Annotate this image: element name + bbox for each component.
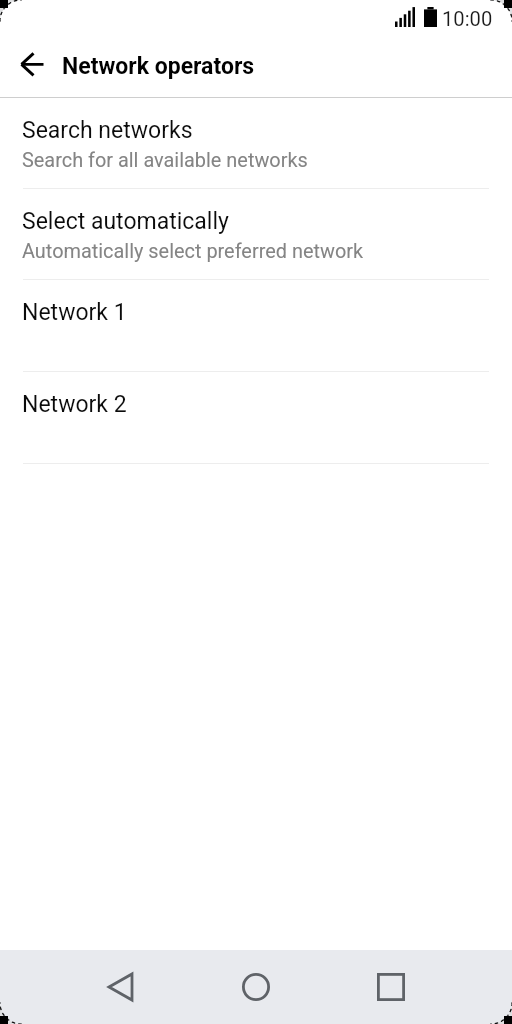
staticText: Search networks — [22, 117, 193, 144]
button[interactable]: Back — [60, 950, 180, 1024]
button[interactable]: Select automatically — [0, 189, 512, 279]
button[interactable]: Search networks — [0, 98, 512, 188]
staticText: 10:00 — [442, 7, 493, 31]
staticText: Automatically select preferred network — [22, 240, 364, 263]
button[interactable]: Network 2 — [0, 372, 512, 463]
staticText: Search for all available networks — [22, 149, 308, 172]
staticText: Network operators — [62, 53, 255, 80]
button[interactable]: Back — [9, 44, 55, 90]
button[interactable]: Recent apps — [331, 950, 451, 1024]
button[interactable]: Home — [196, 950, 316, 1024]
staticText: Select automatically — [22, 208, 229, 235]
staticText: Network 2 — [22, 391, 127, 418]
button[interactable]: Network 1 — [0, 280, 512, 371]
staticText: Network 1 — [22, 299, 127, 326]
